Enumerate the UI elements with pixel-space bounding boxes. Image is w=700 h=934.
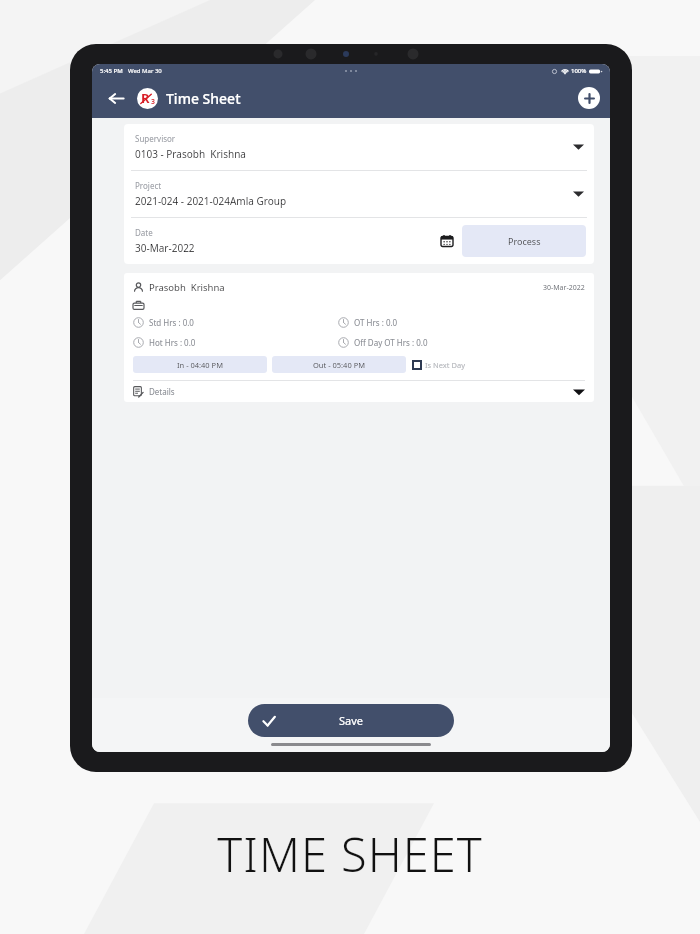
button[interactable]: Details bbox=[133, 381, 585, 402]
staticText: Details bbox=[149, 386, 175, 397]
staticText: Save bbox=[339, 713, 364, 728]
staticText: Prasobh Krishna bbox=[149, 281, 225, 294]
staticText: R bbox=[141, 89, 150, 107]
button[interactable]: Out - 05:40 PM bbox=[272, 356, 406, 373]
button[interactable]: In - 04:40 PM bbox=[133, 356, 267, 373]
staticText: 30-Mar-2022 bbox=[543, 283, 585, 293]
button[interactable]: Back bbox=[102, 84, 130, 112]
button[interactable]: Process bbox=[462, 225, 586, 257]
staticText: 100% bbox=[571, 67, 587, 75]
staticText: Hot Hrs : 0.0 bbox=[149, 337, 196, 348]
button[interactable]: Project bbox=[124, 171, 594, 217]
staticText: TIME SHEET bbox=[0, 822, 700, 886]
button[interactable]: Add bbox=[578, 87, 600, 109]
button[interactable]: Pick date bbox=[437, 231, 457, 251]
staticText: Off Day OT Hrs : 0.0 bbox=[354, 337, 428, 348]
staticText: Project bbox=[135, 180, 162, 191]
staticText: In - 04:40 PM bbox=[177, 360, 223, 370]
staticText: 0103 - Prasobh Krishna bbox=[135, 147, 246, 161]
staticText: Date bbox=[135, 227, 153, 238]
staticText: Out - 05:40 PM bbox=[313, 360, 365, 370]
staticText: Is Next Day bbox=[425, 360, 465, 370]
staticText: OT Hrs : 0.0 bbox=[354, 317, 398, 328]
staticText: Time Sheet bbox=[166, 89, 241, 108]
staticText: 5:45 PM bbox=[100, 67, 123, 75]
staticText: Wed Mar 30 bbox=[128, 67, 162, 75]
staticText: 3 bbox=[151, 97, 156, 107]
button[interactable]: Save bbox=[248, 704, 454, 737]
staticText: Std Hrs : 0.0 bbox=[149, 317, 194, 328]
button[interactable]: Supervisor bbox=[124, 124, 594, 170]
staticText: 2021-024 - 2021-024Amla Group bbox=[135, 194, 287, 208]
staticText: Process bbox=[508, 235, 541, 247]
button[interactable]: Date bbox=[135, 227, 437, 255]
staticText: Supervisor bbox=[135, 133, 176, 144]
staticText: 30-Mar-2022 bbox=[135, 241, 195, 255]
button[interactable]: Is Next Day bbox=[412, 360, 465, 370]
